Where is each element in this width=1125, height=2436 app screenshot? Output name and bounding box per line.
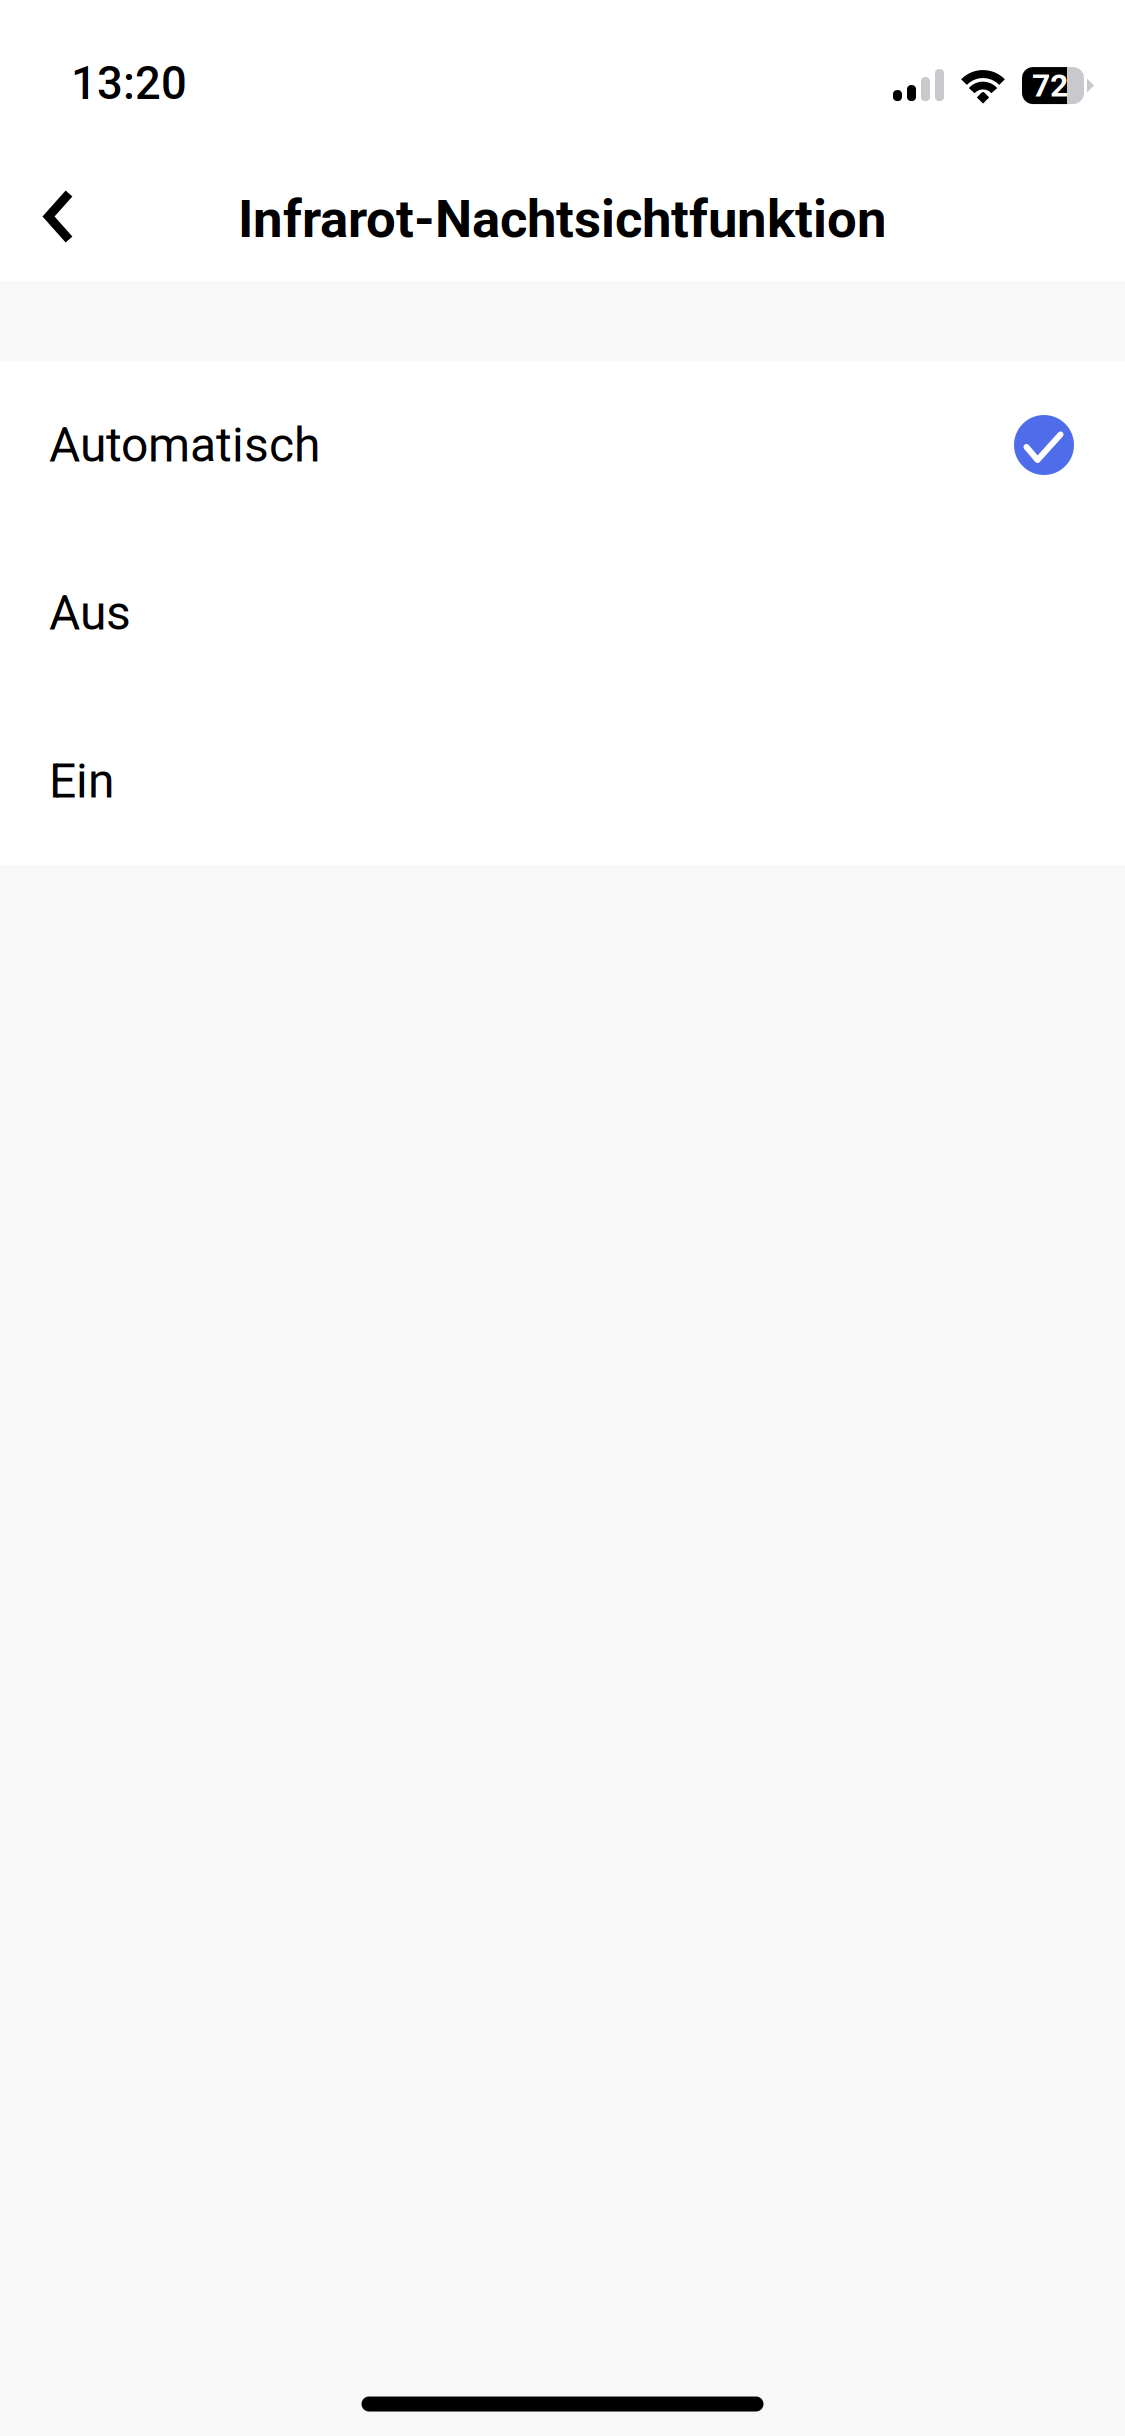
staticText: Ein bbox=[49, 753, 115, 809]
staticText: 13:20 bbox=[71, 57, 187, 110]
staticText: Aus bbox=[49, 585, 131, 641]
button[interactable]: Aus bbox=[0, 529, 1125, 697]
button[interactable]: Back bbox=[0, 152, 110, 270]
staticText: Automatisch bbox=[49, 417, 320, 473]
button[interactable]: Ein bbox=[0, 697, 1125, 865]
staticText: Infrarot-Nachtsichtfunktion bbox=[238, 188, 887, 250]
staticText: 72 bbox=[1032, 67, 1068, 104]
button[interactable]: Automatisch bbox=[0, 361, 1125, 529]
